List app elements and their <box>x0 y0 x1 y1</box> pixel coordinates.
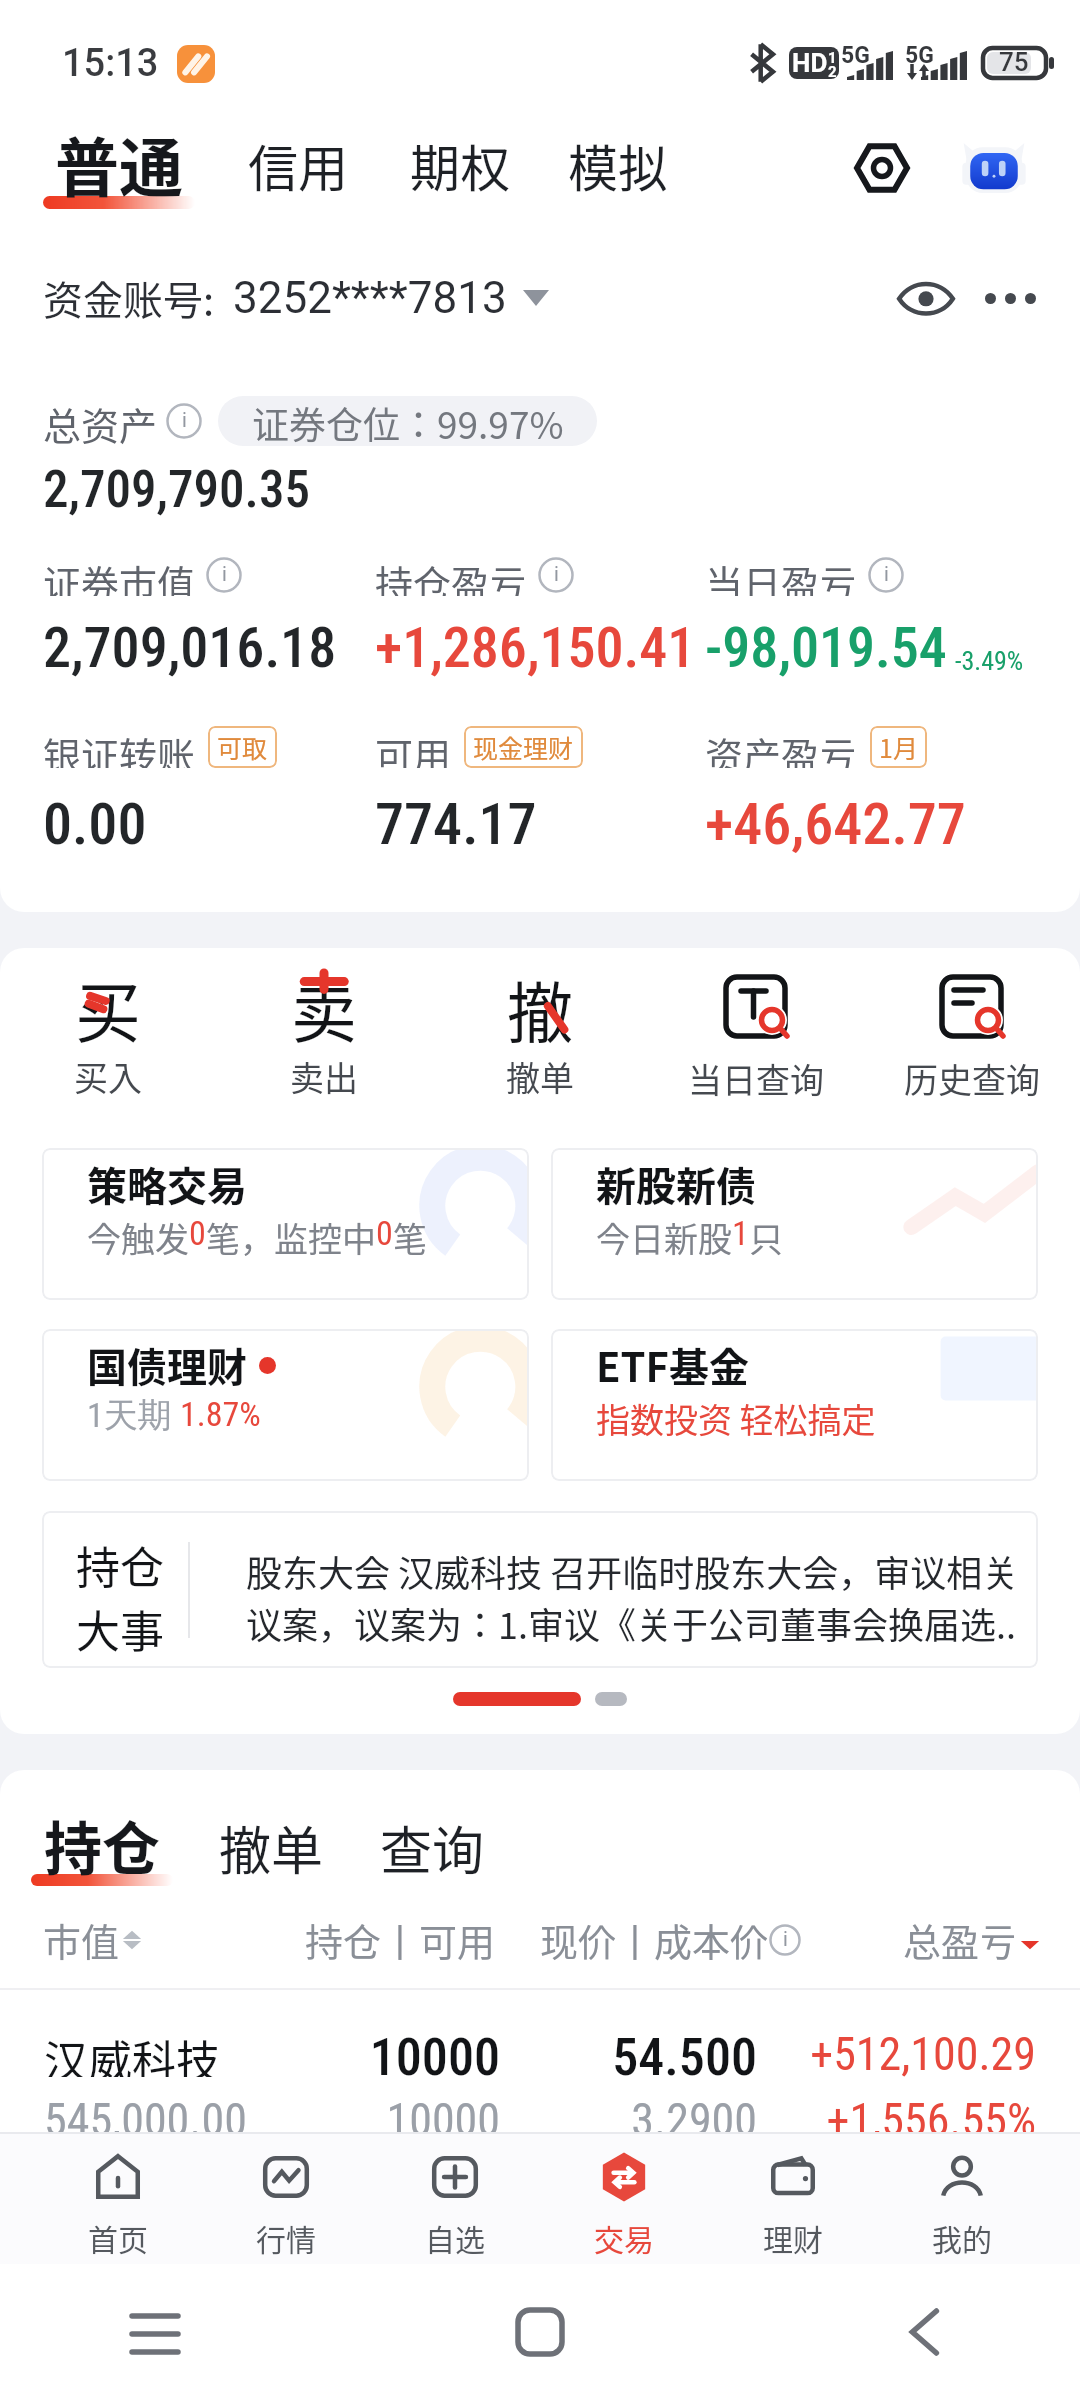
staticText: 行情 <box>256 2216 316 2259</box>
button[interactable]: AI assistant <box>952 126 1036 210</box>
staticText: 期权 <box>410 129 510 201</box>
staticText: i <box>182 408 187 433</box>
button[interactable]: 交易 <box>539 2134 708 2264</box>
button[interactable]: 普通 <box>43 108 195 228</box>
staticText: 总资产 <box>43 396 158 446</box>
staticText: 买入 <box>74 1052 142 1101</box>
button[interactable]: 撤 <box>432 960 648 1101</box>
button[interactable]: 信用 <box>248 108 348 228</box>
staticText: 5G <box>841 42 870 69</box>
staticText: 笔，监控中 <box>206 1213 376 1262</box>
staticText: 1 <box>732 1213 749 1253</box>
button[interactable]: Toggle amount visibility <box>890 262 962 334</box>
button[interactable]: 模拟 <box>568 108 668 228</box>
staticText: 查询 <box>380 1810 485 1885</box>
staticText: 信用 <box>248 129 348 201</box>
button[interactable]: 自选 <box>370 2134 539 2264</box>
staticText: 3.2900 <box>0 2093 757 2142</box>
button[interactable]: Home <box>495 2287 585 2377</box>
staticText: 历史查询 <box>904 1054 1040 1103</box>
staticText: 0 <box>376 1213 393 1253</box>
staticText: 1.87% <box>180 1394 261 1434</box>
staticText: i <box>884 562 889 587</box>
staticText: 1天期 <box>87 1394 180 1437</box>
staticText: 银证转账 <box>43 726 196 768</box>
staticText: +46,642.77 <box>705 790 966 858</box>
staticText: +1,286,150.41 <box>375 615 696 681</box>
staticText: 议案，议案为：1.审议《关于公司董事会换届选... <box>246 1597 1018 1649</box>
staticText: 资金账号: <box>43 269 215 327</box>
staticText: 自选 <box>425 2216 485 2259</box>
staticText: 指数投资 轻松搞定 <box>596 1394 876 1443</box>
button[interactable]: 行情 <box>202 2134 370 2264</box>
staticText: 2 <box>828 63 837 77</box>
staticText: 普通 <box>55 117 183 210</box>
staticText: 2,709,790.35 <box>43 460 311 520</box>
staticText: 今触发 <box>87 1213 189 1262</box>
button[interactable]: 国债理财 <box>42 1329 529 1481</box>
staticText: 新股新债 <box>596 1155 756 1213</box>
staticText: 当日查询 <box>688 1054 824 1103</box>
staticText: 54.500 <box>0 2027 757 2077</box>
staticText: 现金理财 <box>473 729 574 765</box>
staticText: HD <box>792 48 828 78</box>
staticText: 理财 <box>763 2216 823 2259</box>
button[interactable]: Back <box>880 2287 970 2377</box>
button[interactable]: 策略交易 <box>42 1148 529 1300</box>
staticText: i <box>783 1927 788 1952</box>
button[interactable]: 历史查询 <box>864 960 1080 1103</box>
staticText: 774.17 <box>375 790 537 858</box>
staticText: 大事 <box>76 1597 164 1661</box>
button[interactable]: 首页 <box>34 2134 202 2264</box>
staticText: 国债理财 <box>87 1336 247 1394</box>
staticText: 5G <box>905 42 934 69</box>
staticText: 汉威科技 <box>44 2027 220 2077</box>
button[interactable]: 撤单 <box>219 1794 324 1906</box>
staticText: 交易 <box>594 2216 654 2259</box>
staticText: 撤单 <box>506 1052 574 1101</box>
button[interactable]: 持仓 <box>31 1794 173 1906</box>
button[interactable]: Recents <box>110 2287 200 2377</box>
staticText: 笔 <box>393 1213 427 1262</box>
staticText: 可取 <box>217 729 268 765</box>
staticText: 当日盈亏 <box>705 554 858 596</box>
button[interactable]: Settings <box>842 128 922 208</box>
button[interactable]: 我的 <box>877 2134 1046 2264</box>
staticText: 股东大会 汉威科技 召开临时股东大会，审议相关 <box>246 1545 1018 1597</box>
button[interactable]: 汉威科技 <box>0 1990 1080 2142</box>
staticText: 现价丨成本价 <box>540 1912 769 1967</box>
staticText: 0.00 <box>43 790 147 858</box>
button[interactable]: 当日查询 <box>648 960 864 1103</box>
staticText: 0 <box>189 1213 206 1253</box>
button[interactable]: ETF基金 <box>551 1329 1038 1481</box>
staticText: 撤单 <box>219 1810 324 1885</box>
staticText: -3.49% <box>955 646 1024 676</box>
staticText: 545,000.00 <box>44 2093 247 2142</box>
staticText: 2,709,016.18 <box>43 615 337 681</box>
staticText: 可用 <box>375 726 452 768</box>
button[interactable]: 资金账号: <box>43 269 549 327</box>
staticText: 75 <box>999 47 1029 77</box>
staticText: +512,100.29 <box>0 2027 1036 2077</box>
staticText: 卖出 <box>290 1052 358 1101</box>
staticText: 卖 <box>291 960 357 1052</box>
staticText: 10000 <box>0 2027 500 2077</box>
button[interactable]: 持仓 <box>42 1511 1038 1668</box>
button[interactable]: 期权 <box>410 108 510 228</box>
staticText: 证券仓位：99.97% <box>252 396 564 446</box>
button[interactable]: More options <box>974 262 1046 334</box>
staticText: 总盈亏 <box>903 1912 1018 1967</box>
staticText: 3252****7813 <box>233 272 507 324</box>
button[interactable]: 新股新债 <box>551 1148 1038 1300</box>
button[interactable]: 查询 <box>380 1794 485 1906</box>
staticText: 持仓 <box>76 1533 164 1597</box>
staticText: 模拟 <box>568 129 668 201</box>
staticText: 今日新股 <box>596 1213 732 1262</box>
button[interactable]: 理财 <box>708 2134 877 2264</box>
staticText: ETF基金 <box>596 1336 749 1394</box>
button[interactable]: 卖 <box>216 960 432 1101</box>
staticText: 首页 <box>88 2216 148 2259</box>
staticText: 市值 <box>43 1912 120 1967</box>
staticText: i <box>554 562 559 587</box>
button[interactable]: 买 <box>0 960 216 1101</box>
